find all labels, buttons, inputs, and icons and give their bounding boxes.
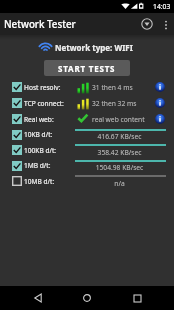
staticText: 1504.98 KB/sec <box>74 163 165 172</box>
staticText: 14:03 <box>153 2 171 11</box>
staticText: 416.67 KB/sec <box>74 132 165 141</box>
staticText: Real web: <box>24 115 54 124</box>
button[interactable]: Home <box>75 286 99 310</box>
staticText: 100KB d/t: <box>24 146 57 155</box>
staticText: real web content <box>92 115 145 124</box>
button[interactable]: Host resolv: <box>0 79 174 95</box>
staticText: Network Tester <box>4 18 76 31</box>
button[interactable]: TCP connect: <box>0 95 174 111</box>
button[interactable]: Recents <box>125 286 149 310</box>
staticText: Host resolv: <box>24 83 61 92</box>
button[interactable]: START TESTS <box>44 60 130 76</box>
button[interactable]: Real web: <box>0 111 174 127</box>
button[interactable]: 10MB d/t: <box>0 173 174 189</box>
staticText: 358.42 KB/sec <box>74 148 165 157</box>
staticText: TCP connect: <box>24 99 64 108</box>
button[interactable]: Info <box>145 114 174 124</box>
button[interactable]: More options <box>157 16 174 33</box>
staticText: 10KB d/t: <box>24 130 53 139</box>
button[interactable]: 10KB d/t: <box>0 127 174 142</box>
staticText: START TESTS <box>58 63 116 74</box>
button[interactable]: Info <box>145 98 174 108</box>
button[interactable]: 1MB d/t: <box>0 158 174 173</box>
staticText: 32 then 32 ms <box>92 99 137 108</box>
staticText: Network type: WIFI <box>55 42 133 53</box>
button[interactable]: 100KB d/t: <box>0 142 174 158</box>
button[interactable]: Back <box>26 286 50 310</box>
button[interactable]: Info <box>145 82 174 92</box>
staticText: 1MB d/t: <box>24 161 51 170</box>
button[interactable]: Expand <box>137 14 157 34</box>
staticText: n/a <box>74 179 165 188</box>
staticText: 10MB d/t: <box>24 177 55 186</box>
staticText: 31 then 4 ms <box>92 83 133 92</box>
